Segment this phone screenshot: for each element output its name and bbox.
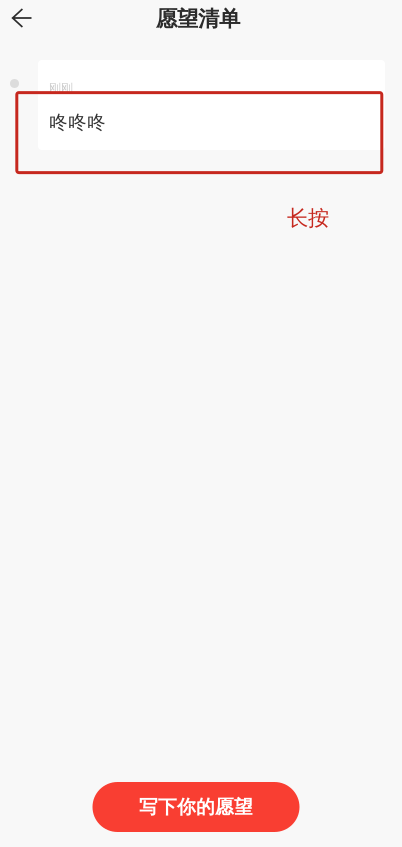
- staticText: 刚刚: [49, 81, 73, 96]
- staticText: 写下你的愿望: [139, 795, 253, 818]
- button[interactable]: 写下你的愿望: [92, 782, 299, 832]
- button[interactable]: 返回: [0, 0, 46, 38]
- staticText: 愿望清单: [156, 6, 240, 32]
- staticText: 咚咚咚: [49, 111, 106, 134]
- staticText: 长按: [287, 205, 329, 231]
